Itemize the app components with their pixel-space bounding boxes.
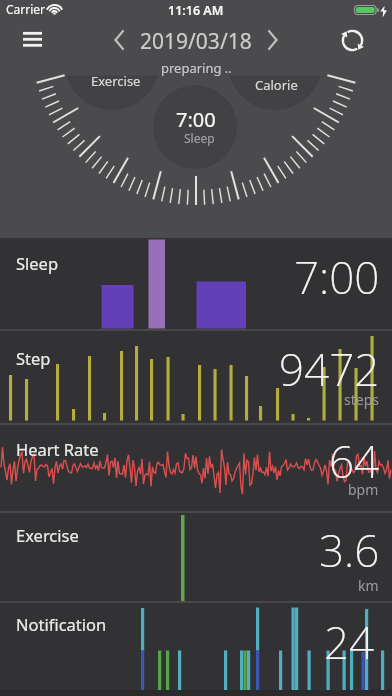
button[interactable] [106,26,134,54]
staticText: km [358,576,379,595]
staticText: 9472 [279,339,380,399]
staticText: Sleep [184,130,215,146]
button[interactable]: Heart Rate [0,425,392,511]
button[interactable]: Calorie [226,76,326,94]
button[interactable] [336,24,370,58]
button[interactable]: Exercise [66,72,166,90]
staticText: 64 [329,431,380,491]
staticText: 3.6 [319,520,380,580]
staticText: Sleep [16,252,59,274]
button[interactable]: 7:00 [146,106,246,133]
button[interactable] [258,26,286,54]
button[interactable]: Exercise [0,513,392,601]
staticText: Heart Rate [16,438,99,460]
staticText: 7:00 [294,247,380,307]
button[interactable]: Notification [0,603,392,696]
button[interactable]: 2019/03/18 [130,26,262,56]
staticText: Step [16,347,51,369]
staticText: Exercise [16,524,79,546]
button[interactable]: Step [0,331,392,423]
staticText: Notification [16,613,107,635]
staticText: 7:00 [176,106,216,133]
staticText: 24 [324,612,375,672]
staticText: 11:16 AM [168,2,224,19]
staticText: Calorie [255,76,298,94]
staticText: bpm [348,480,379,499]
staticText: 2019/03/18 [140,27,252,56]
button[interactable] [14,24,52,54]
staticText: Exercise [91,72,141,90]
staticText: preparing .. [161,59,232,77]
button[interactable]: Sleep [0,238,392,329]
staticText: Carrier [6,1,46,17]
staticText: steps [344,390,379,409]
